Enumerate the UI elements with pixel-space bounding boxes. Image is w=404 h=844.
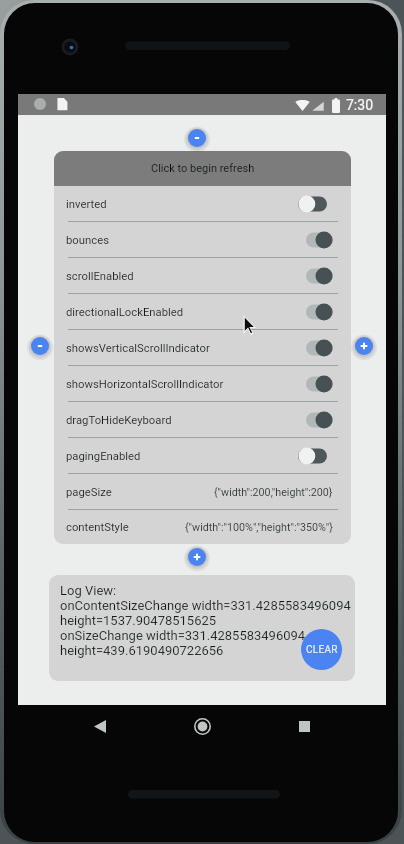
button[interactable]: bounces <box>54 222 351 258</box>
staticText: height=439.6190490722656 <box>60 643 224 658</box>
button[interactable]: Increase <box>350 332 378 360</box>
staticText: contentStyle <box>66 521 129 534</box>
staticText: 7:30 <box>346 97 373 113</box>
staticText: onSizeChange width=331.4285583496094 <box>60 628 306 643</box>
staticText: height=1537.90478515625 <box>60 613 217 628</box>
staticText: bounces <box>66 234 109 247</box>
staticText: pagingEnabled <box>66 450 141 463</box>
staticText: showsHorizontalScrollIndicator <box>66 378 224 391</box>
button[interactable]: pagingEnabled <box>54 438 351 474</box>
button[interactable]: Toggle <box>298 231 333 249</box>
button[interactable]: dragToHideKeyboard <box>54 402 351 438</box>
button[interactable]: Toggle <box>298 195 333 213</box>
button[interactable]: Toggle <box>298 447 333 465</box>
staticText: dragToHideKeyboard <box>66 414 172 427</box>
staticText: Click to begin refresh <box>151 162 255 175</box>
button[interactable]: showsVerticalScrollIndicator <box>54 330 351 366</box>
button[interactable]: Toggle <box>298 339 333 357</box>
staticText: CLEAR <box>306 644 338 656</box>
button[interactable]: Decrease <box>183 124 211 152</box>
staticText: inverted <box>66 198 107 211</box>
staticText: onContentSizeChange width=331.4285583496… <box>60 598 351 613</box>
staticText: scrollEnabled <box>66 270 134 283</box>
button[interactable]: Toggle <box>298 375 333 393</box>
button[interactable]: Back <box>86 712 114 740</box>
staticText: pageSize <box>66 486 112 499</box>
button[interactable]: Recents <box>290 712 318 740</box>
button[interactable]: CLEAR <box>301 629 342 670</box>
button[interactable]: Toggle <box>298 267 333 285</box>
staticText: showsVerticalScrollIndicator <box>66 342 210 355</box>
button[interactable]: Home <box>188 712 216 740</box>
button[interactable]: Decrease <box>26 332 54 360</box>
button[interactable]: Toggle <box>298 303 333 321</box>
button[interactable]: showsHorizontalScrollIndicator <box>54 366 351 402</box>
button[interactable]: scrollEnabled <box>54 258 351 294</box>
staticText: directionalLockEnabled <box>66 306 184 319</box>
staticText: {"width":"100%","height":"350%"} <box>185 521 333 534</box>
button[interactable]: Click to begin refresh <box>54 151 351 186</box>
button[interactable]: Toggle <box>298 411 333 429</box>
button[interactable]: inverted <box>54 186 351 222</box>
button[interactable]: pageSize <box>54 474 351 510</box>
button[interactable]: Increase <box>183 543 211 571</box>
staticText: {"width":200,"height":200} <box>214 486 333 499</box>
staticText: Log View: <box>60 583 117 598</box>
button[interactable]: directionalLockEnabled <box>54 294 351 330</box>
button[interactable]: contentStyle <box>54 510 351 544</box>
